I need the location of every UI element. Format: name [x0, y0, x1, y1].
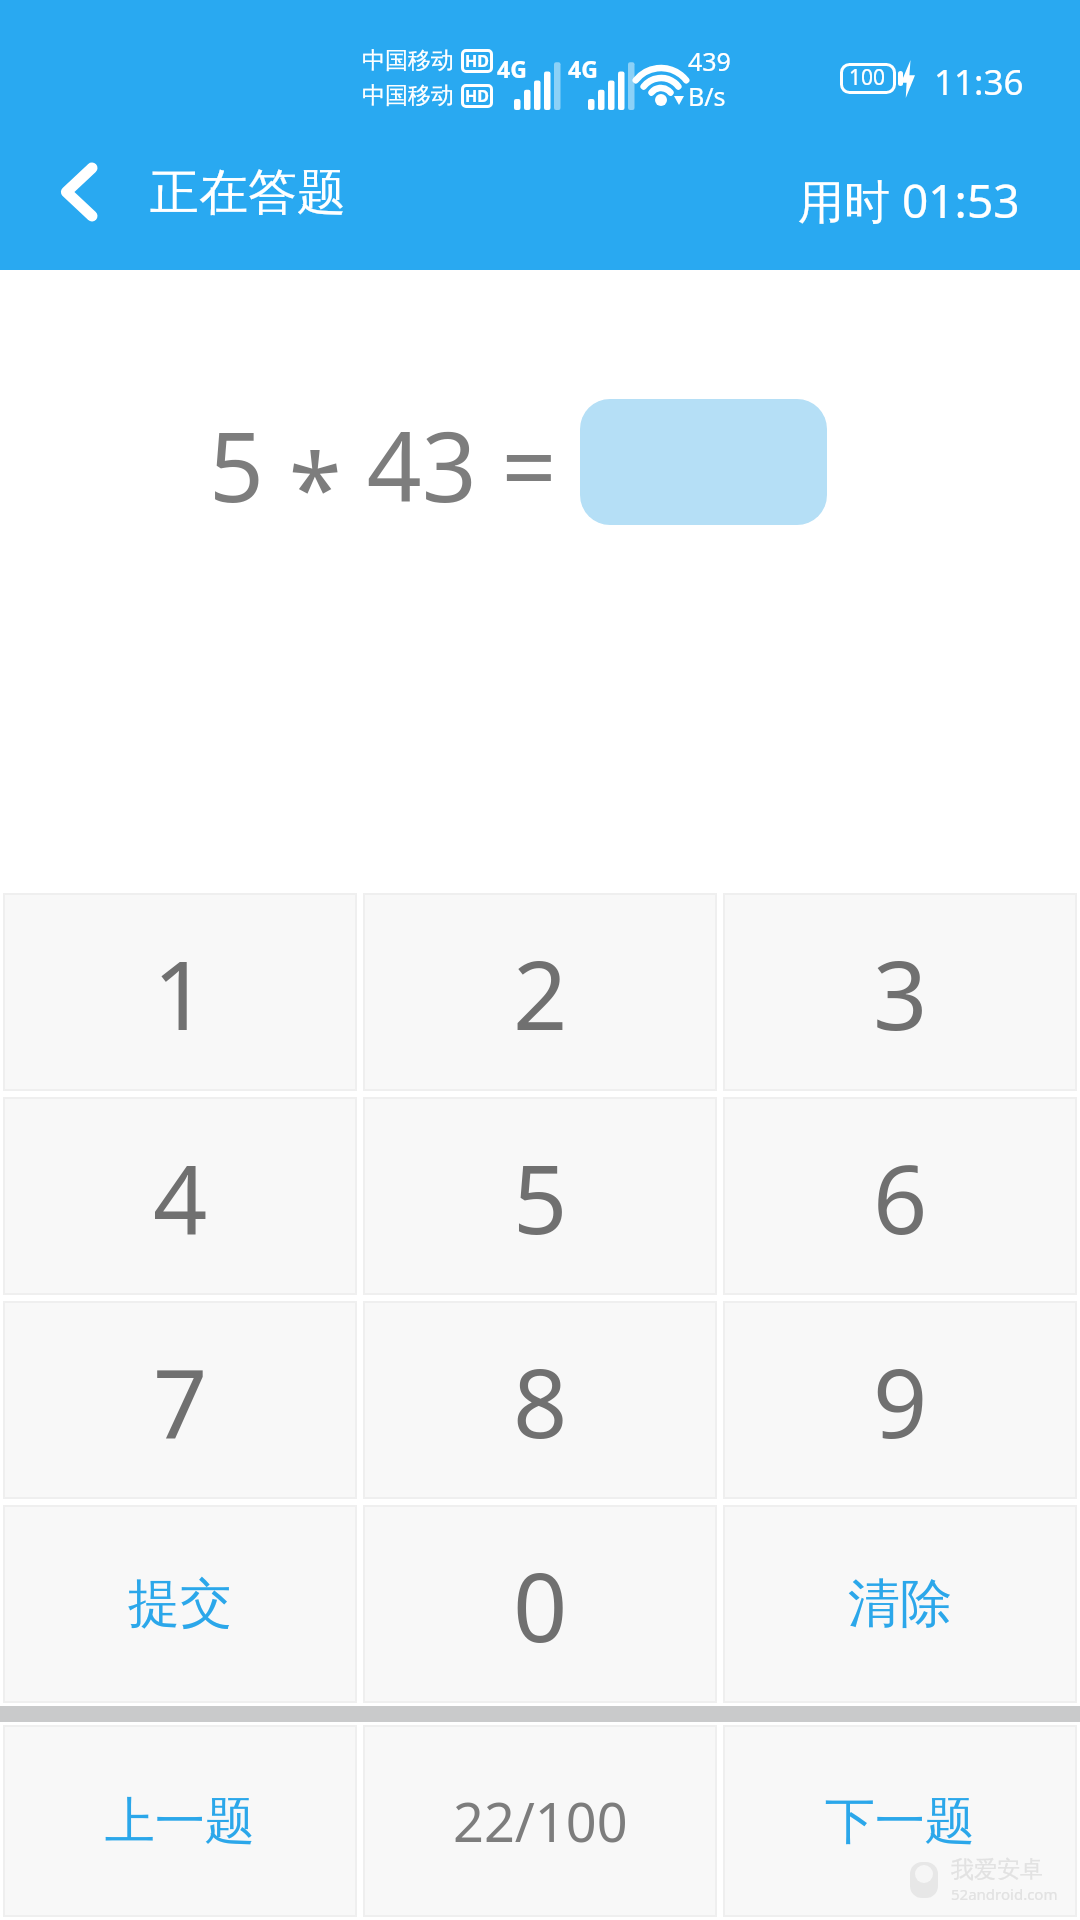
staticText: 5 * 43 =: [209, 399, 557, 525]
staticText: B/s: [688, 79, 726, 113]
staticText: 4: [153, 1132, 208, 1261]
staticText: 11:36: [934, 58, 1024, 106]
staticText: 439: [688, 44, 731, 78]
staticText: 正在答题: [150, 162, 346, 224]
staticText: 中国移动: [362, 81, 454, 110]
staticText: 下一题: [825, 1790, 975, 1853]
staticText: 0: [513, 1540, 568, 1669]
staticText: 9: [873, 1336, 928, 1465]
staticText: 清除: [848, 1571, 952, 1637]
staticText: 上一题: [105, 1790, 255, 1853]
staticText: 1: [153, 928, 208, 1057]
staticText: 8: [513, 1336, 568, 1465]
staticText: 提交: [128, 1571, 232, 1637]
staticText: 4G: [497, 53, 527, 84]
staticText: 100: [849, 63, 886, 92]
staticText: 4G: [568, 53, 598, 84]
staticText: 3: [873, 928, 928, 1057]
staticText: 我爱安卓: [951, 1855, 1043, 1884]
staticText: 用时 01:53: [798, 169, 1020, 232]
staticText: 22/100: [453, 1784, 628, 1858]
staticText: HD: [465, 50, 489, 72]
staticText: 5: [513, 1132, 568, 1261]
staticText: HD: [465, 85, 489, 107]
staticText: 6: [873, 1132, 928, 1261]
staticText: 52android.com: [951, 1884, 1058, 1904]
staticText: 2: [513, 928, 568, 1057]
staticText: 中国移动: [362, 46, 454, 75]
staticText: 7: [153, 1336, 208, 1465]
